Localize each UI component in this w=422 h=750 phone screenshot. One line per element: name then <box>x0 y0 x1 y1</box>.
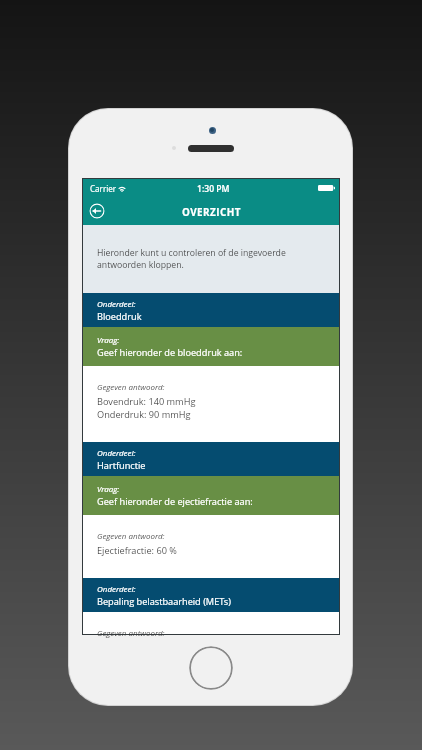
staticText: Ejectiefractie: 60 % <box>97 544 177 557</box>
staticText: Vraag: <box>97 334 120 345</box>
staticText: Bovendruk: 140 mmHg <box>97 395 196 408</box>
button[interactable]: Home <box>189 646 233 690</box>
staticText: Hartfunctie <box>97 459 146 472</box>
staticText: Onderdeel: <box>97 583 136 594</box>
staticText: Carrier <box>90 183 117 194</box>
staticText: Onderdeel: <box>97 447 136 458</box>
staticText: Gegeven antwoord: <box>97 381 165 392</box>
staticText: Vraag: <box>97 483 120 494</box>
staticText: OVERZICHT <box>182 205 241 218</box>
staticText: Geef hieronder de bloeddruk aan: <box>97 346 243 359</box>
staticText: Gegeven antwoord: <box>97 627 165 638</box>
staticText: Bepaling belastbaarheid (METs) <box>97 595 231 608</box>
staticText: 1:30 PM <box>197 183 230 195</box>
staticText: Onderdeel: <box>97 298 136 309</box>
staticText: Geef hieronder de ejectiefractie aan: <box>97 495 253 508</box>
button[interactable]: Back <box>89 203 105 219</box>
staticText: Onderdruk: 90 mmHg <box>97 408 191 421</box>
staticText: antwoorden kloppen. <box>97 259 184 271</box>
staticText: Hieronder kunt u controleren of de ingev… <box>97 247 286 259</box>
staticText: Bloeddruk <box>97 310 142 323</box>
staticText: Gegeven antwoord: <box>97 530 165 541</box>
